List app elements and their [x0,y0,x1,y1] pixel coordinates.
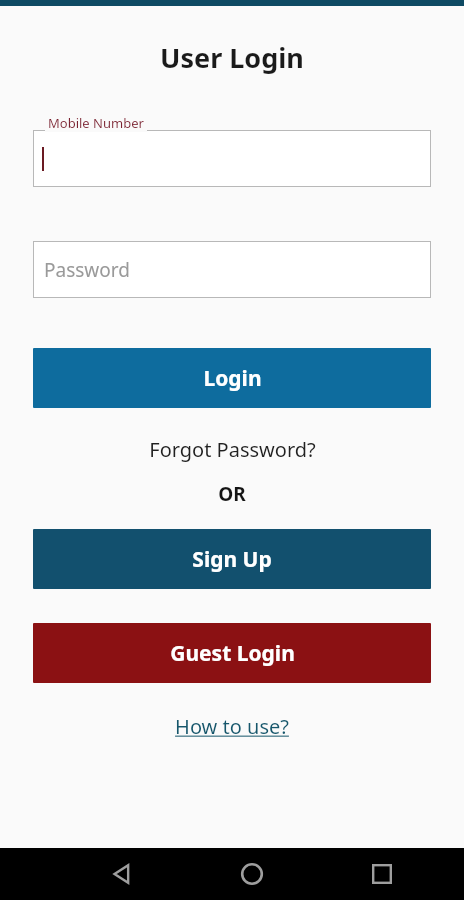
staticText: Mobile Number [48,114,144,132]
staticText: How to use? [175,713,289,740]
staticText: Guest Login [170,639,295,668]
button[interactable]: Forgot Password? [33,436,431,463]
button[interactable]: Password [33,241,431,298]
staticText: User Login [33,39,431,76]
button[interactable]: Sign Up [33,529,431,589]
button[interactable]: Login [33,348,431,408]
staticText: Login [203,364,262,393]
staticText: OR [218,481,246,507]
button[interactable]: Back [96,848,148,900]
staticText: Password [44,257,130,283]
staticText: Forgot Password? [149,436,316,463]
button[interactable]: Guest Login [33,623,431,683]
button[interactable]: Home [226,848,278,900]
button[interactable] [33,130,431,187]
staticText: Sign Up [192,545,272,574]
button[interactable]: How to use? [33,713,431,740]
button[interactable]: Recent apps [356,848,408,900]
